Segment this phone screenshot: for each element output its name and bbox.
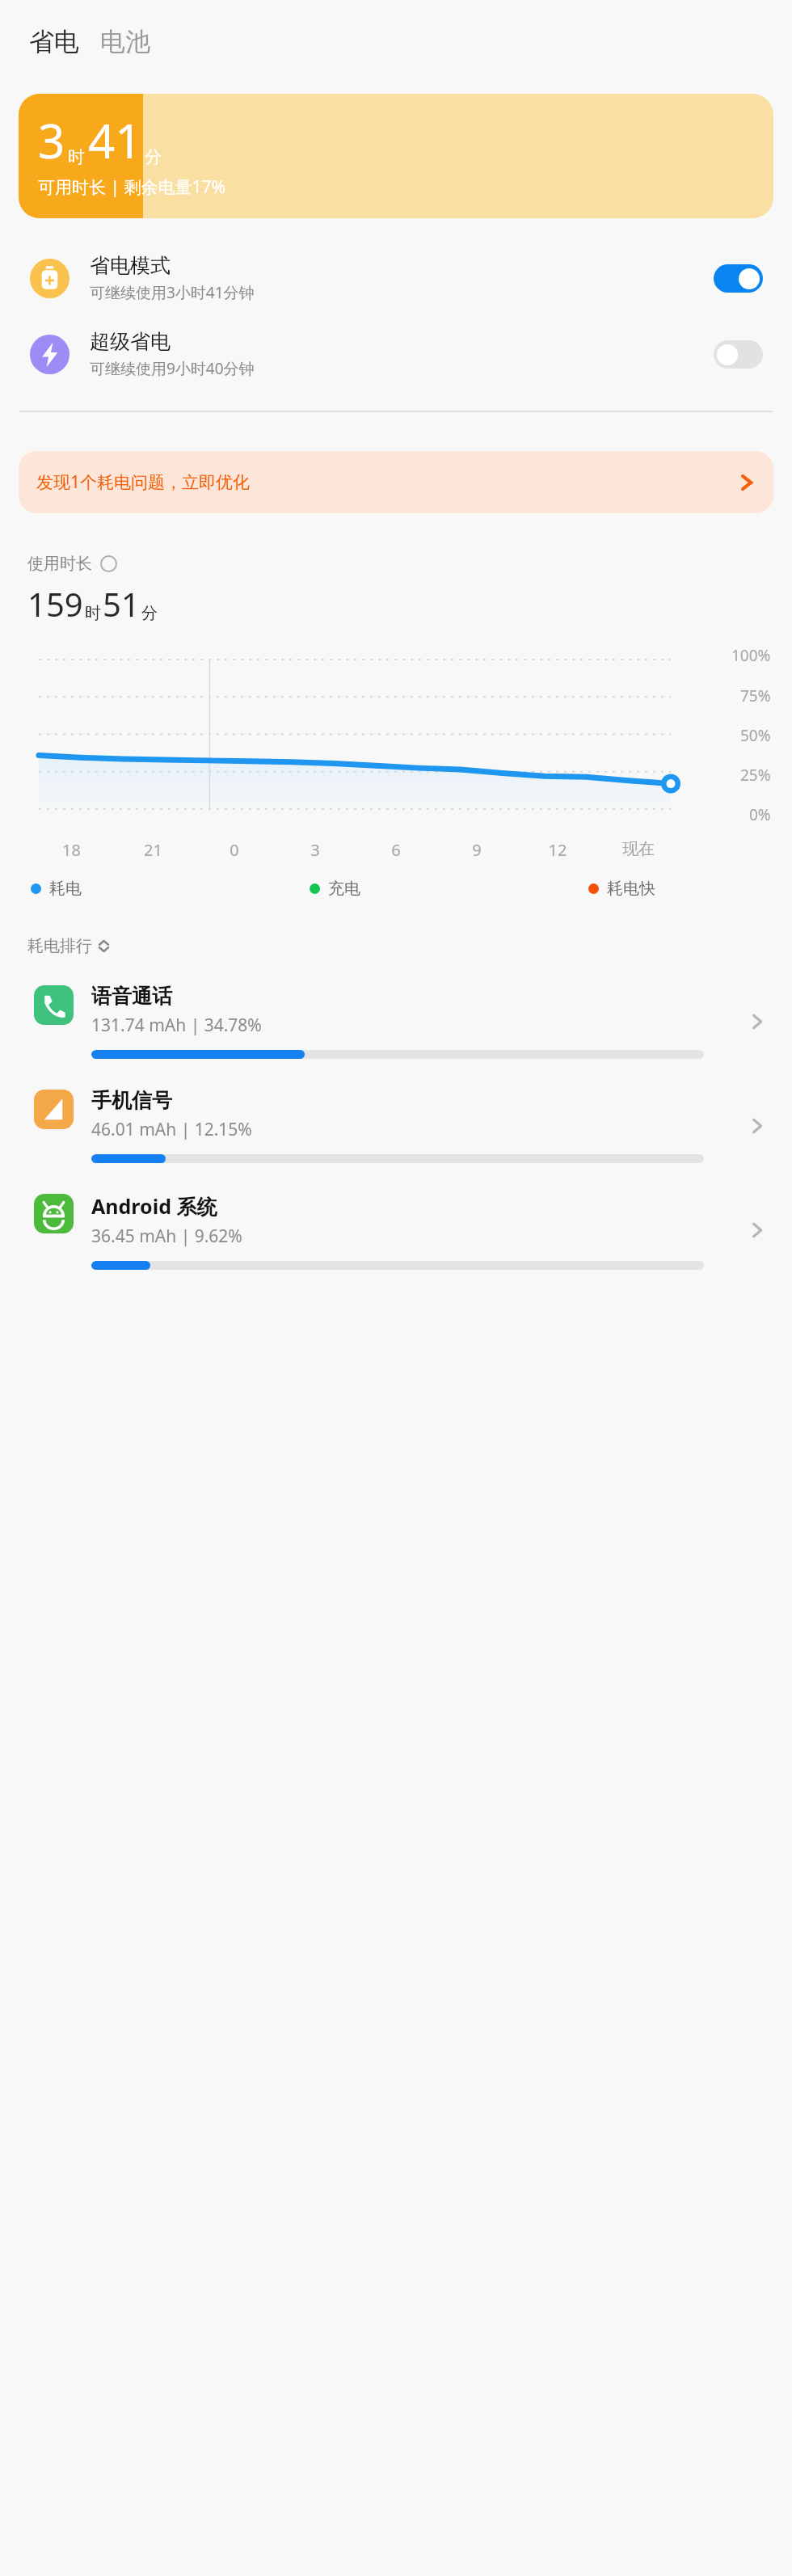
staticText: 75% <box>740 685 771 706</box>
button[interactable]: 语音通话 <box>0 980 792 1062</box>
button[interactable]: 手机信号 <box>0 1085 792 1166</box>
staticText: 分 <box>145 146 162 167</box>
staticText: 耗电排行 <box>27 936 92 956</box>
button[interactable]: 省电 <box>27 23 81 61</box>
staticText: 发现1个耗电问题，立即优化 <box>36 470 251 494</box>
staticText: 25% <box>740 765 771 786</box>
staticText: 现在 <box>598 839 679 859</box>
button[interactable]: 3 <box>19 94 773 218</box>
staticText: 语音通话 <box>91 984 172 1009</box>
staticText: 0 <box>194 839 275 861</box>
button[interactable]: Open 手机信号 details <box>747 1115 768 1136</box>
staticText: 41 <box>88 108 142 172</box>
staticText: 时 <box>68 146 85 167</box>
staticText: 可用时长 | 剩余电量17% <box>38 175 225 199</box>
staticText: 超级省电 <box>90 329 171 354</box>
staticText: 省电 <box>29 26 79 57</box>
staticText: 充电 <box>328 879 360 899</box>
staticText: Android 系统 <box>91 1192 217 1220</box>
staticText: 9 <box>436 839 517 861</box>
staticText: 3 <box>38 108 65 172</box>
button[interactable]: 发现1个耗电问题，立即优化 <box>19 451 773 513</box>
staticText: 46.01 mAh | 12.15% <box>91 1118 252 1141</box>
staticText: 手机信号 <box>91 1088 172 1113</box>
staticText: 6 <box>356 839 436 861</box>
staticText: 耗电 <box>49 879 82 899</box>
staticText: 12 <box>517 839 598 861</box>
staticText: 100% <box>731 645 771 666</box>
staticText: 使用时长 <box>27 554 92 574</box>
staticText: 省电模式 <box>90 253 171 278</box>
button[interactable]: Android 系统 <box>0 1189 792 1273</box>
staticText: 159 <box>27 582 83 626</box>
staticText: 耗电快 <box>607 879 655 899</box>
staticText: 电池 <box>100 26 150 57</box>
button[interactable]: 耗电快 <box>588 879 761 899</box>
staticText: 3 <box>275 839 356 861</box>
other: Help <box>100 555 117 572</box>
staticText: 0% <box>749 804 771 825</box>
button[interactable]: 省电模式 <box>0 248 792 308</box>
staticText: 51 <box>103 582 140 626</box>
staticText: 可继续使用9小时40分钟 <box>90 358 255 379</box>
button[interactable]: 超级省电 <box>0 324 792 384</box>
button[interactable]: Open Android 系统 details <box>747 1220 768 1241</box>
button[interactable]: 耗电 <box>31 879 310 899</box>
staticText: 18 <box>31 839 112 861</box>
staticText: 可继续使用3小时41分钟 <box>90 282 255 303</box>
staticText: 36.45 mAh | 9.62% <box>91 1225 242 1248</box>
staticText: 50% <box>740 725 771 746</box>
button[interactable]: 电池 <box>99 23 152 61</box>
button[interactable]: Open 语音通话 details <box>747 1011 768 1032</box>
button[interactable]: 耗电排行 <box>27 936 111 956</box>
staticText: 时 <box>85 603 101 623</box>
button[interactable]: 使用时长 <box>27 554 117 574</box>
staticText: 21 <box>112 839 194 861</box>
staticText: 131.74 mAh | 34.78% <box>91 1014 262 1037</box>
staticText: 分 <box>141 603 158 623</box>
button[interactable]: 充电 <box>310 879 588 899</box>
button[interactable]: On <box>714 264 763 293</box>
button[interactable]: Off <box>714 340 763 369</box>
